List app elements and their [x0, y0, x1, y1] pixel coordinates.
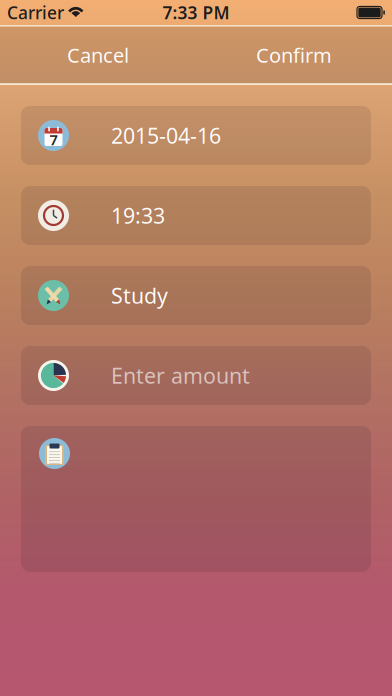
- button[interactable]: Enter amount: [21, 346, 371, 405]
- button[interactable]: Cancel: [0, 25, 196, 85]
- staticText: Carrier: [7, 1, 64, 24]
- staticText: 7: [49, 130, 57, 149]
- button[interactable]: 19:33: [21, 186, 371, 245]
- button[interactable]: Confirm: [196, 25, 392, 85]
- staticText: Confirm: [256, 42, 332, 68]
- button[interactable]: 7: [21, 106, 371, 165]
- staticText: Study: [111, 281, 168, 310]
- button[interactable]: Study: [21, 266, 371, 325]
- staticText: 19:33: [111, 201, 165, 230]
- staticText: 2015-04-16: [111, 121, 221, 150]
- staticText: 7:33 PM: [162, 1, 229, 24]
- staticText: Enter amount: [111, 361, 250, 390]
- button[interactable]: [21, 426, 371, 572]
- staticText: Cancel: [67, 42, 129, 68]
